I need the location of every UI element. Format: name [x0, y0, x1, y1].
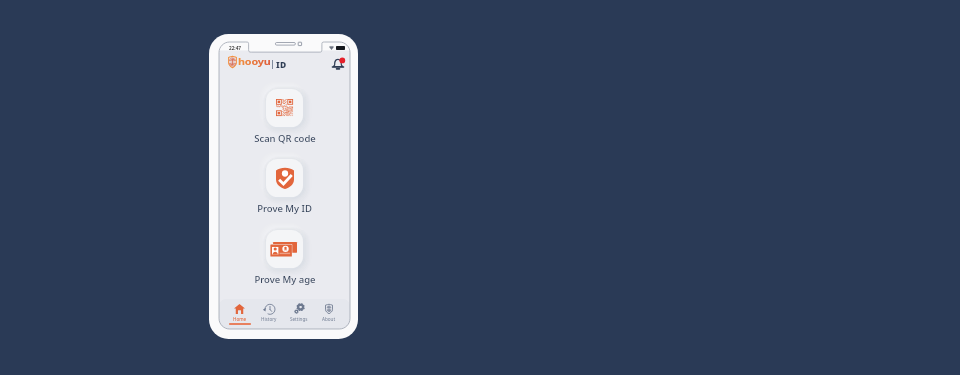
staticText: Prove My age: [254, 273, 316, 286]
staticText: hooyu: [238, 55, 270, 68]
staticText: History: [261, 316, 277, 322]
button[interactable]: About: [314, 299, 344, 329]
staticText: Scan QR code: [254, 132, 316, 145]
staticText: 22:47: [229, 45, 242, 51]
button[interactable]: History: [254, 299, 284, 329]
button[interactable]: [266, 89, 303, 127]
button[interactable]: [266, 230, 303, 268]
staticText: ID: [276, 59, 287, 71]
button[interactable]: Notifications: [328, 54, 348, 74]
staticText: About: [322, 316, 336, 322]
button[interactable]: [266, 159, 303, 197]
staticText: Home: [233, 316, 247, 322]
button[interactable]: Home: [225, 299, 254, 329]
button[interactable]: Settings: [284, 299, 314, 329]
staticText: Settings: [290, 316, 308, 322]
staticText: Prove My ID: [257, 202, 312, 215]
